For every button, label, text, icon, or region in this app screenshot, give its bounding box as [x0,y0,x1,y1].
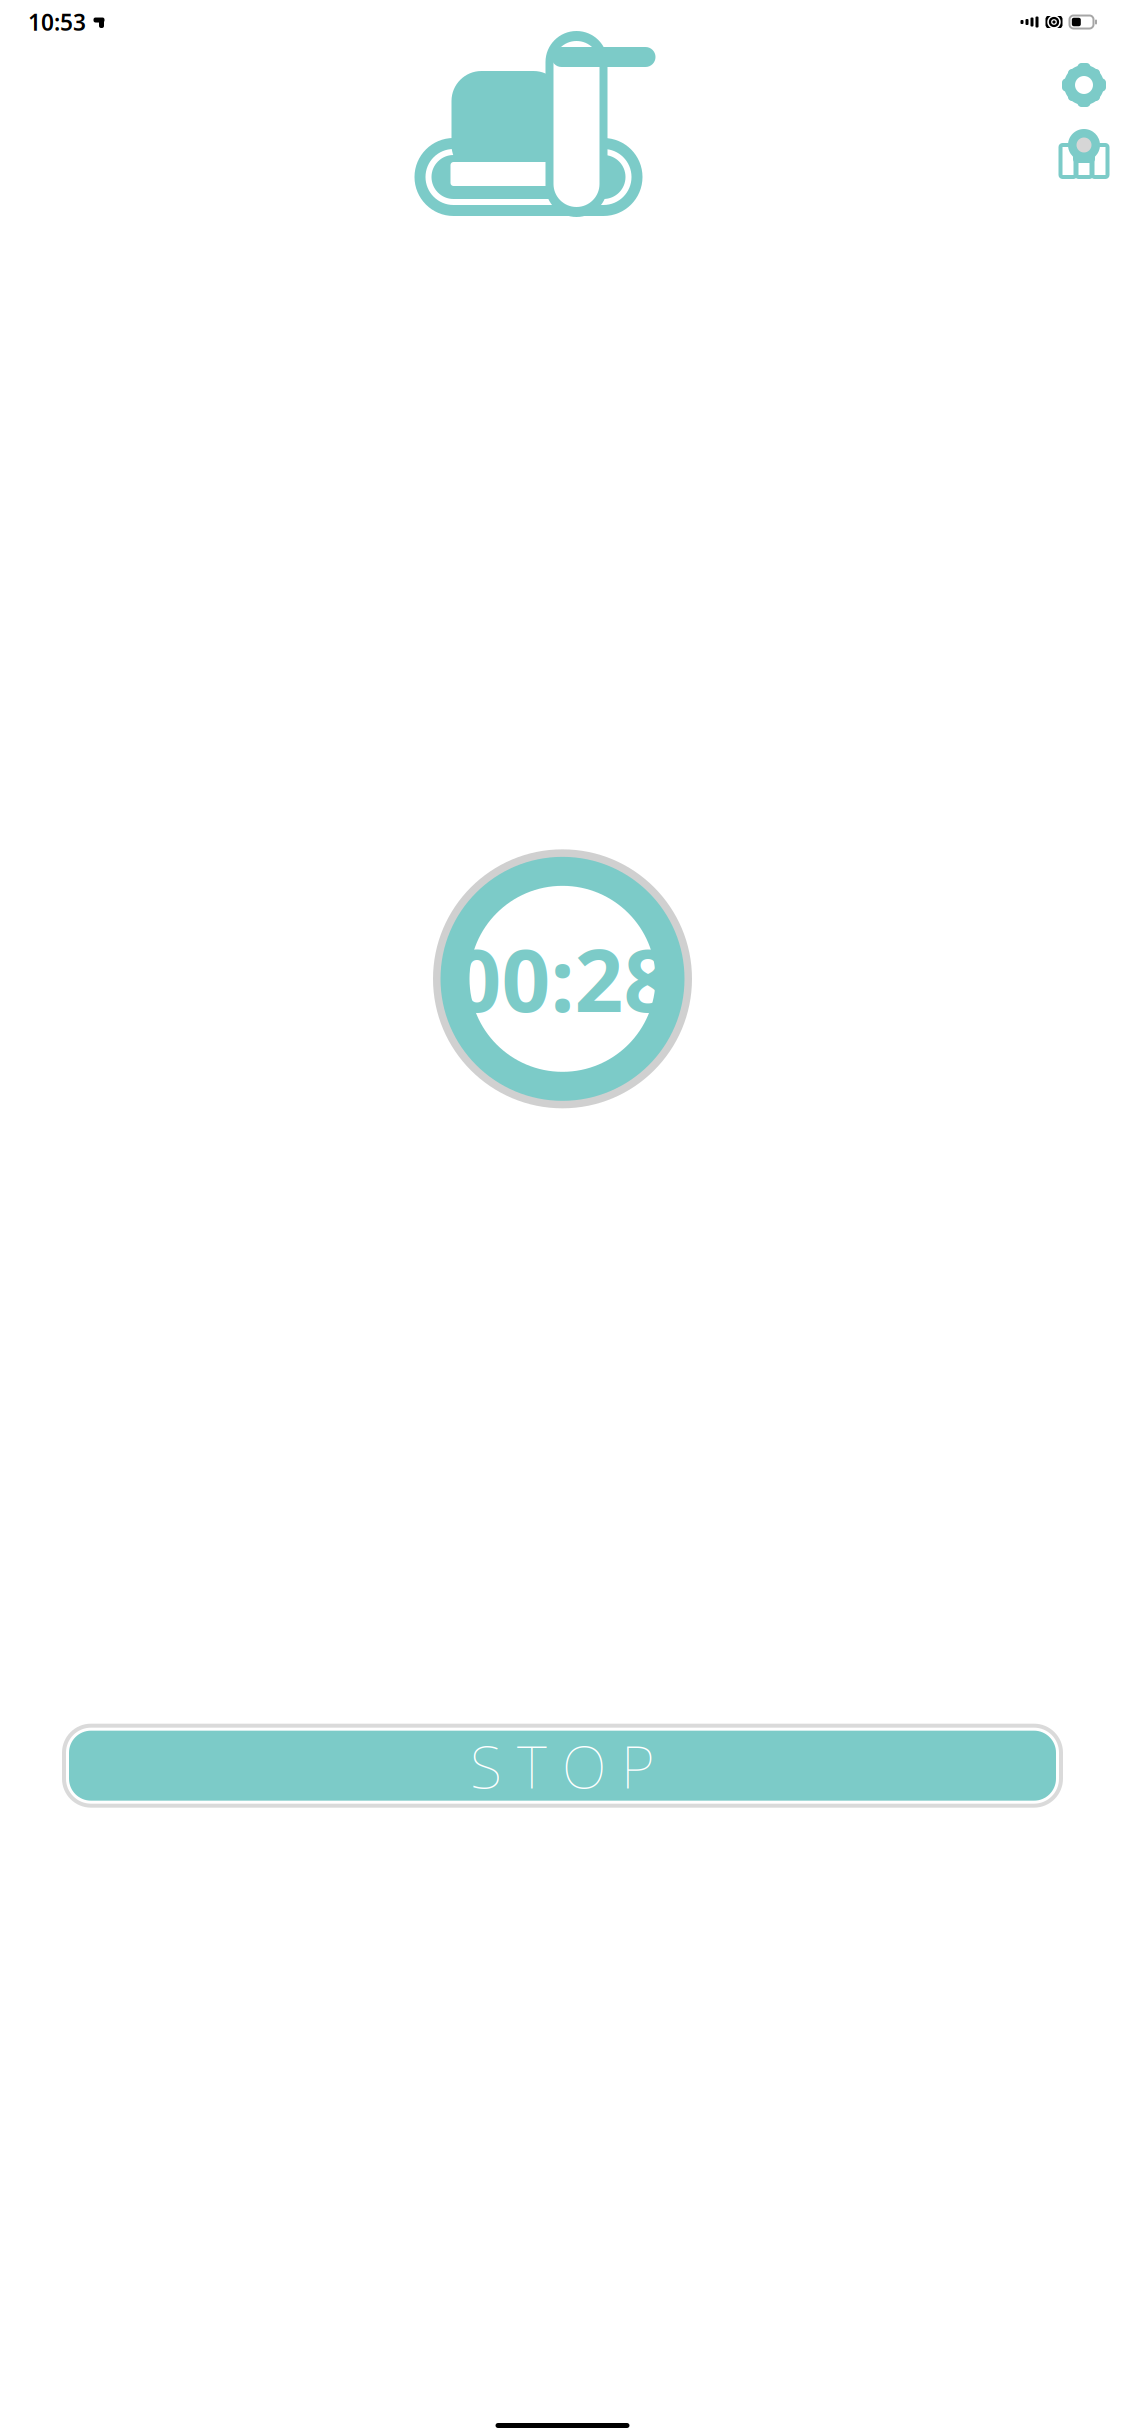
button[interactable]: S T O P [62,1724,1063,1808]
button[interactable]: Settings [1057,58,1111,112]
staticText: 00:28 [452,922,672,1035]
button[interactable]: Map [1057,126,1111,180]
staticText: 10:53 [28,7,86,37]
staticText: S T O P [470,1727,655,1805]
